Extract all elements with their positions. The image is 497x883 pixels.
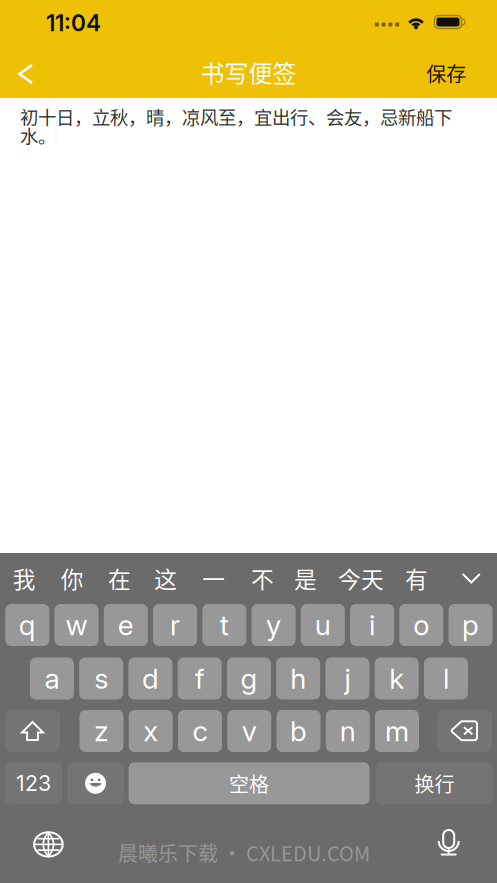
staticText: 这: [154, 562, 177, 594]
staticText: g: [240, 662, 257, 695]
button[interactable]: 空格: [129, 762, 370, 804]
staticText: 一: [202, 562, 225, 594]
button[interactable]: 我: [1, 553, 47, 603]
button[interactable]: o: [399, 604, 443, 646]
button[interactable]: 在: [96, 553, 142, 603]
button[interactable]: z: [79, 710, 123, 752]
staticText: 我: [13, 562, 36, 594]
button[interactable]: j: [325, 657, 369, 699]
button[interactable]: f: [178, 657, 222, 699]
staticText: 今天: [338, 562, 384, 594]
staticText: s: [94, 662, 108, 695]
staticText: 不: [251, 562, 274, 594]
button[interactable]: s: [79, 657, 123, 699]
staticText: z: [94, 714, 109, 748]
staticText: 水。: [20, 122, 56, 149]
button[interactable]: h: [276, 657, 320, 699]
staticText: l: [443, 662, 449, 695]
staticText: 123: [16, 770, 51, 796]
staticText: t: [220, 608, 229, 642]
staticText: o: [413, 608, 429, 642]
button[interactable]: n: [326, 710, 370, 752]
staticText: m: [385, 714, 409, 748]
staticText: 初十日，立秋，晴，凉风至，宜出行、会友，忌新船下: [20, 103, 452, 130]
button[interactable]: Dictate: [423, 817, 475, 869]
button[interactable]: a: [30, 657, 74, 699]
button[interactable]: 是: [282, 553, 328, 603]
staticText: 11:04: [46, 9, 101, 37]
button[interactable]: Hide suggestions: [449, 553, 493, 603]
staticText: 在: [108, 562, 131, 594]
button[interactable]: l: [424, 657, 468, 699]
button[interactable]: v: [227, 710, 271, 752]
button[interactable]: Back: [0, 50, 52, 98]
staticText: i: [369, 608, 375, 642]
button[interactable]: g: [227, 657, 271, 699]
staticText: 空格: [229, 769, 269, 798]
staticText: y: [266, 608, 281, 642]
button[interactable]: 不: [241, 553, 283, 603]
staticText: h: [290, 662, 306, 695]
button[interactable]: u: [301, 604, 345, 646]
button[interactable]: 123: [5, 762, 62, 804]
button[interactable]: i: [350, 604, 394, 646]
staticText: j: [344, 662, 350, 695]
staticText: a: [44, 662, 59, 695]
button[interactable]: d: [128, 657, 172, 699]
staticText: 晨曦乐下载 • CXLEDU.COM: [118, 838, 370, 867]
button[interactable]: p: [449, 604, 493, 646]
staticText: 是: [294, 562, 317, 594]
button[interactable]: t: [202, 604, 246, 646]
button[interactable]: 有: [394, 553, 440, 603]
staticText: c: [192, 714, 207, 748]
button[interactable]: Delete: [437, 710, 492, 752]
button[interactable]: 这: [143, 553, 189, 603]
staticText: r: [170, 608, 180, 642]
staticText: u: [315, 608, 331, 642]
button[interactable]: Shift: [5, 710, 60, 752]
staticText: 有: [405, 562, 428, 594]
button[interactable]: Emoji: [67, 762, 123, 804]
button[interactable]: Switch keyboard: [20, 818, 76, 870]
button[interactable]: 今天: [331, 553, 391, 603]
staticText: d: [142, 662, 159, 695]
staticText: p: [462, 608, 479, 642]
staticText: 你: [61, 562, 84, 594]
button[interactable]: 保存: [412, 49, 480, 97]
staticText: b: [290, 714, 307, 748]
staticText: f: [195, 662, 205, 695]
button[interactable]: b: [276, 710, 320, 752]
staticText: e: [118, 608, 134, 642]
button[interactable]: x: [129, 710, 173, 752]
button[interactable]: m: [375, 710, 419, 752]
staticText: 保存: [426, 58, 466, 87]
button[interactable]: 换行: [376, 762, 493, 804]
button[interactable]: k: [375, 657, 419, 699]
button[interactable]: c: [178, 710, 222, 752]
staticText: w: [65, 608, 87, 642]
button[interactable]: y: [252, 604, 296, 646]
staticText: q: [19, 608, 36, 642]
button[interactable]: 一: [191, 553, 237, 603]
button[interactable]: r: [153, 604, 197, 646]
staticText: x: [143, 714, 158, 748]
button[interactable]: e: [104, 604, 148, 646]
staticText: 换行: [414, 769, 454, 798]
button[interactable]: q: [5, 604, 49, 646]
staticText: 书写便签: [200, 55, 296, 89]
staticText: n: [340, 714, 356, 748]
button[interactable]: w: [54, 604, 98, 646]
button[interactable]: 你: [49, 553, 95, 603]
staticText: v: [242, 714, 257, 748]
staticText: k: [389, 662, 404, 695]
